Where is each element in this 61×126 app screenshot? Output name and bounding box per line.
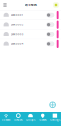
button[interactable]: Scan <box>52 0 60 10</box>
staticText: My devices <box>24 3 36 7</box>
staticText: LMK0003 <box>11 33 24 36</box>
staticText: Devices <box>14 118 22 122</box>
button[interactable]: Devices <box>12 112 24 126</box>
button[interactable]: LMK0001 <box>0 10 61 20</box>
button[interactable]: Add device <box>48 101 57 109</box>
staticText: Scenes <box>39 118 46 122</box>
button[interactable]: Groups <box>24 112 37 126</box>
staticText: LMK0004 <box>11 42 24 45</box>
button[interactable]: LMK0004 <box>0 39 61 48</box>
button[interactable]: Connect <box>0 112 12 126</box>
staticText: LMK0002 <box>11 23 24 26</box>
button[interactable]: Settings <box>49 112 61 126</box>
staticText: LMK0001 <box>11 13 23 17</box>
staticText: Groups <box>26 118 35 122</box>
staticText: Settings <box>50 118 60 122</box>
staticText: Connect <box>2 118 11 122</box>
button[interactable]: Scenes <box>37 112 49 126</box>
button[interactable]: LMK0002 <box>0 20 61 29</box>
button[interactable]: Menu <box>1 0 9 10</box>
button[interactable]: LMK0003 <box>0 30 61 39</box>
